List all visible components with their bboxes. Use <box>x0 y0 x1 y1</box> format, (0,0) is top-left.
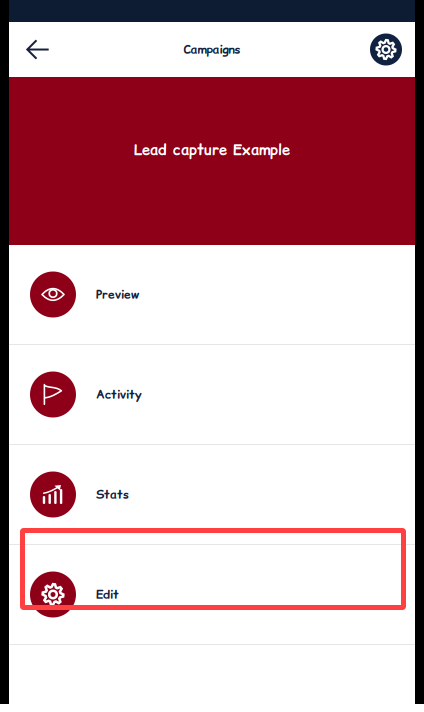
staticText: Activity <box>96 386 142 403</box>
staticText: Preview <box>96 286 139 303</box>
staticText: Lead capture Example <box>134 140 290 160</box>
button[interactable]: Stats <box>9 445 415 544</box>
staticText: Stats <box>96 486 129 503</box>
button[interactable]: Activity <box>9 345 415 444</box>
button[interactable]: Back <box>16 27 60 71</box>
button[interactable]: Preview <box>9 245 415 344</box>
staticText: Edit <box>96 586 119 603</box>
button[interactable]: Edit <box>9 545 415 644</box>
staticText: Campaigns <box>183 41 240 58</box>
button[interactable]: Settings <box>364 27 408 71</box>
